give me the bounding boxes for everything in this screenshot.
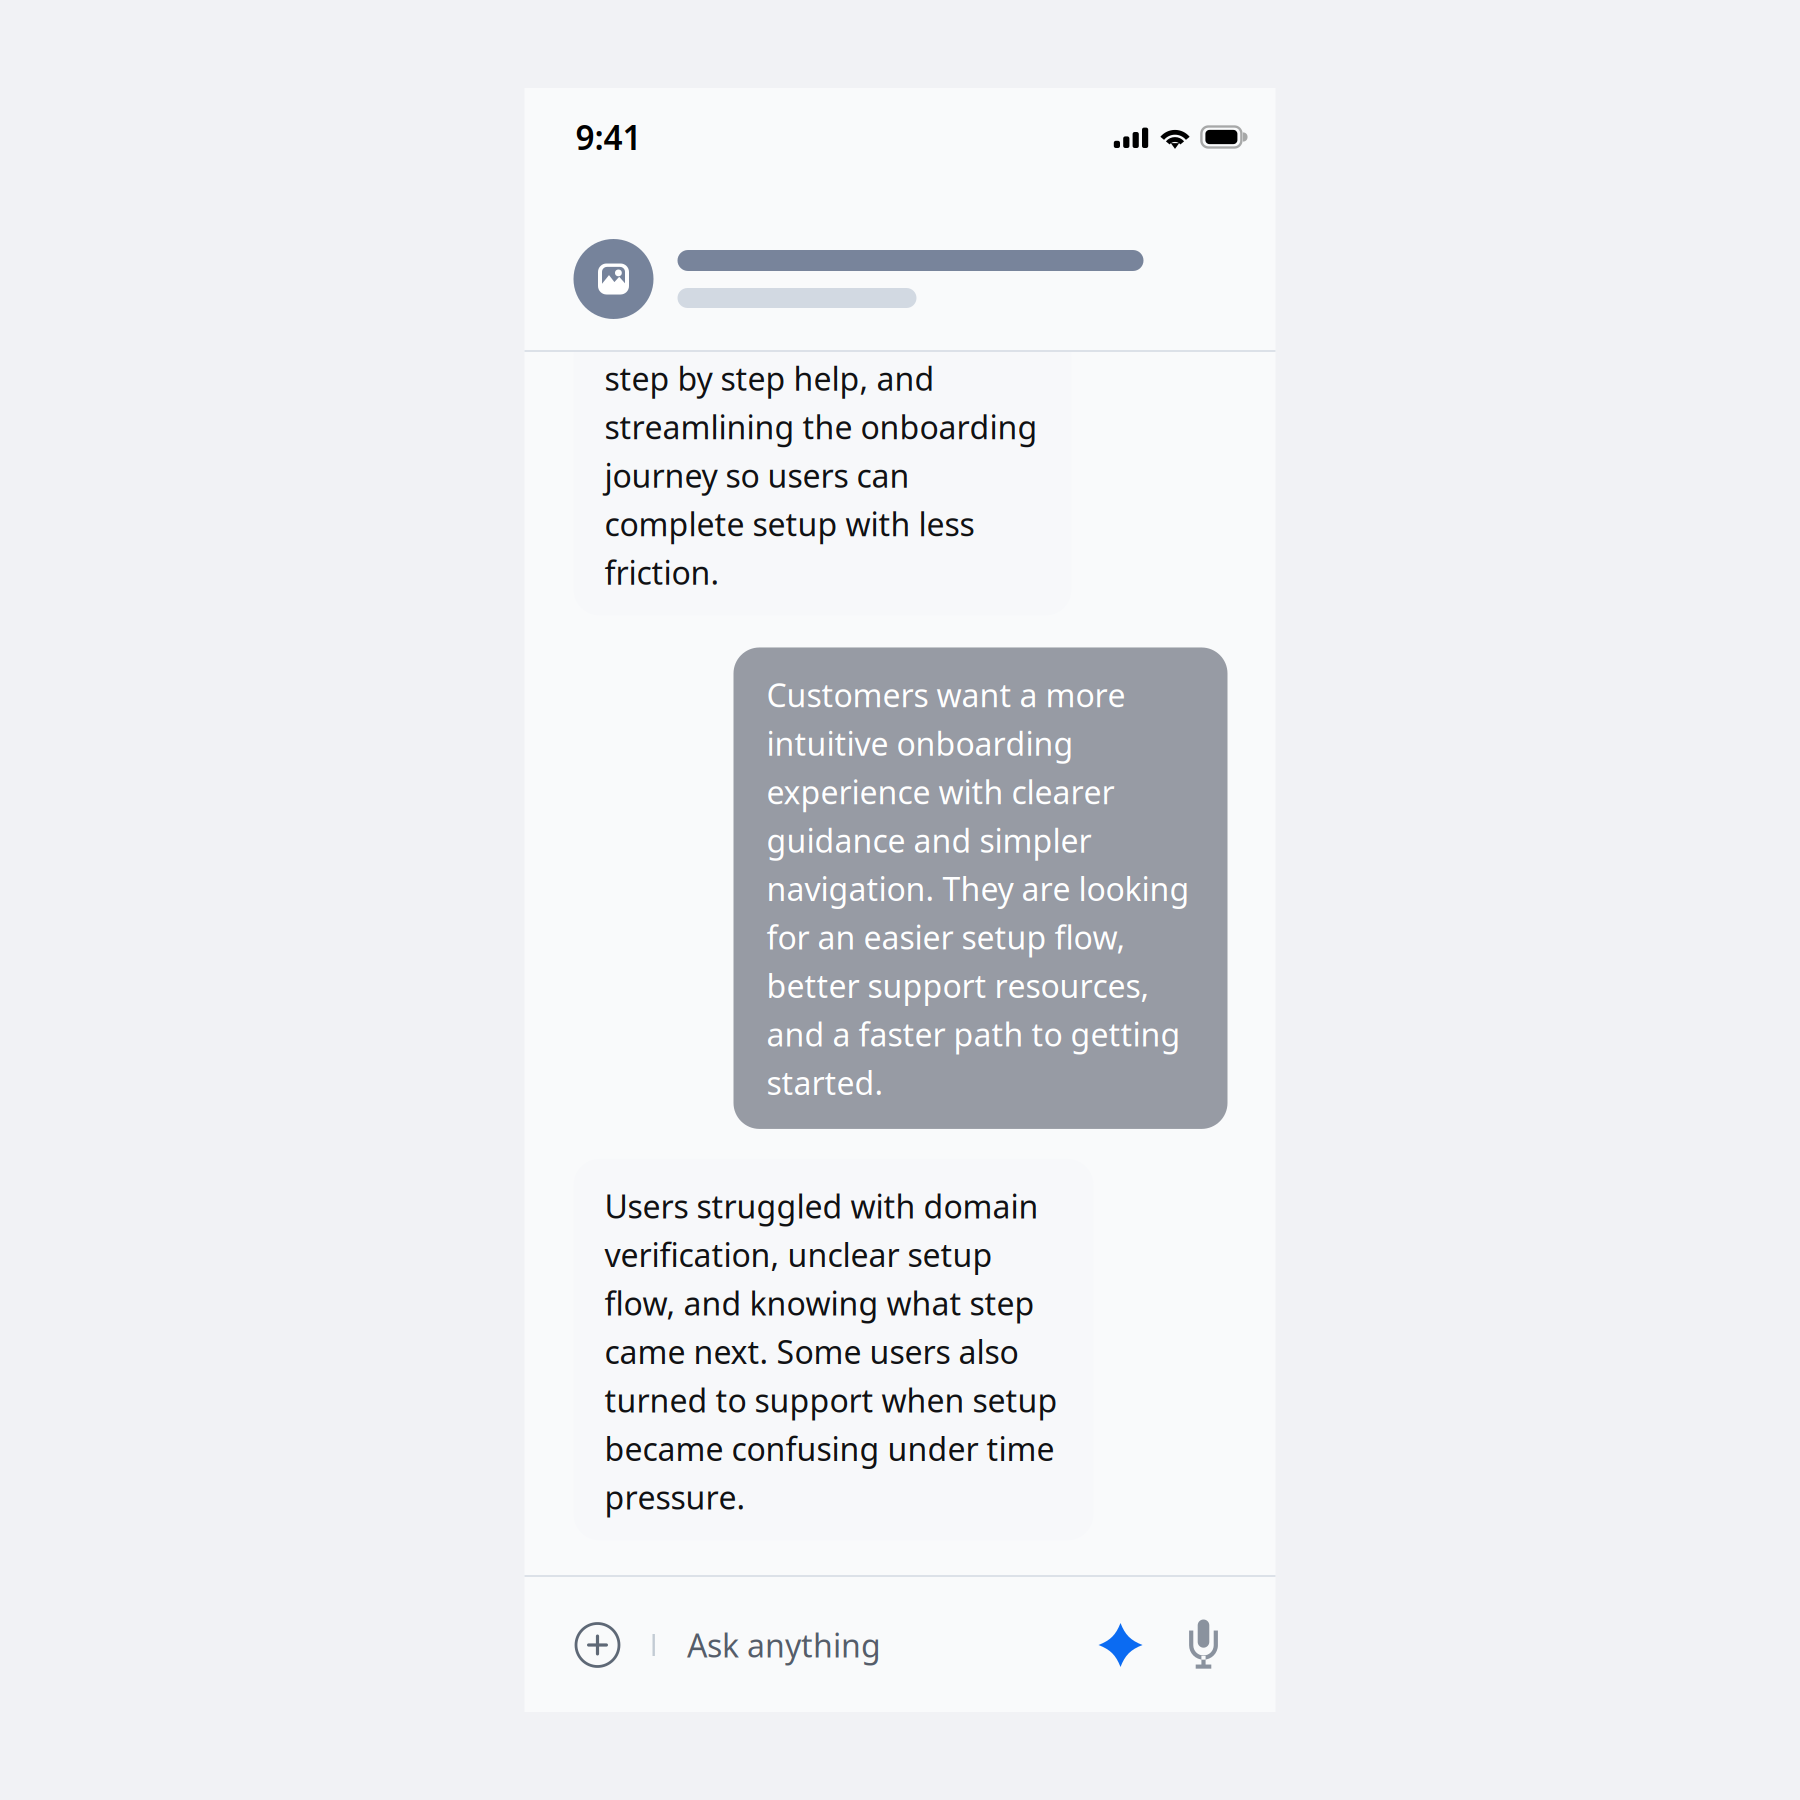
button[interactable]: Ask anything: [655, 1606, 901, 1684]
staticText: step by step help, and streamlining the …: [604, 357, 1037, 593]
button[interactable]: Add attachment: [565, 1613, 629, 1677]
staticText: Customers want a more intuitive onboardi…: [766, 673, 1189, 1104]
button[interactable]: Voice input: [1166, 1613, 1221, 1676]
staticText: 9:41: [575, 115, 641, 159]
staticText: Ask anything: [687, 1624, 881, 1666]
staticText: Users struggled with domain verification…: [604, 1185, 1057, 1518]
button[interactable]: AI suggestions: [1084, 1613, 1166, 1677]
